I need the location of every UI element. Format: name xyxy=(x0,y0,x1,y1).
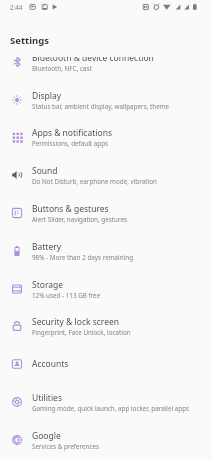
staticText: Bluetooth, NFC, cast xyxy=(32,64,92,73)
staticText: Utilities xyxy=(32,392,62,404)
staticText: Services & preferences xyxy=(32,442,100,451)
button[interactable]: Battery xyxy=(0,232,212,270)
button[interactable]: Buttons & gestures xyxy=(0,194,212,232)
button[interactable]: Storage xyxy=(0,270,212,308)
other: Status bar xyxy=(0,0,212,14)
staticText: Gaming mode, quick launch, app locker, p… xyxy=(32,404,190,413)
button[interactable]: Utilities xyxy=(0,383,212,421)
button[interactable]: Bluetooth & device connection xyxy=(0,57,212,81)
staticText: Sound xyxy=(32,165,58,177)
staticText: Do Not Disturb, earphone mode, vibration xyxy=(32,177,157,186)
staticText: Buttons & gestures xyxy=(32,203,109,215)
staticText: 12% used - 113 GB free xyxy=(32,291,101,300)
staticText: Permissions, default apps xyxy=(32,139,109,148)
staticText: Fingerprint, Face Unlock, location xyxy=(32,328,131,337)
button[interactable]: Sound xyxy=(0,156,212,194)
staticText: Status bar, ambient display, wallpapers,… xyxy=(32,102,170,111)
staticText: Bluetooth & device connection xyxy=(32,57,154,64)
button[interactable]: Settings xyxy=(0,14,212,56)
button[interactable]: Display xyxy=(0,81,212,119)
staticText: 2:44 xyxy=(10,3,23,11)
staticText: Display xyxy=(32,90,61,102)
staticText: Settings xyxy=(10,34,49,47)
staticText: 98% - More than 2 days remaining xyxy=(32,253,134,262)
staticText: Storage xyxy=(32,279,64,291)
staticText: Accounts xyxy=(32,358,69,370)
staticText: Battery xyxy=(32,241,62,253)
staticText: Alert Slider, navigation, gestures xyxy=(32,215,127,224)
staticText: Security & lock screen xyxy=(32,316,120,328)
button[interactable]: Google xyxy=(0,421,212,459)
button[interactable]: Apps & notifications xyxy=(0,118,212,156)
button[interactable]: Accounts xyxy=(0,345,212,383)
button[interactable]: Security & lock screen xyxy=(0,307,212,345)
staticText: Apps & notifications xyxy=(32,127,112,139)
staticText: Google xyxy=(32,430,61,442)
